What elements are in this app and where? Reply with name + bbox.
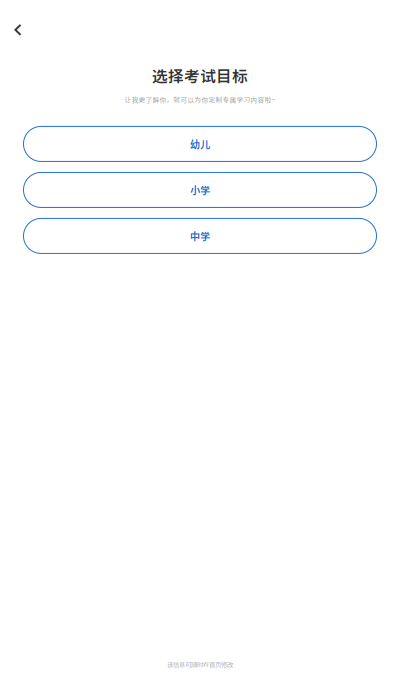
button[interactable]: Back: [1, 13, 35, 47]
staticText: 中学: [190, 229, 210, 243]
staticText: 幼儿: [190, 137, 210, 151]
staticText: 小学: [190, 183, 210, 197]
staticText: 选择考试目标: [152, 64, 248, 87]
staticText: 让我更了解你，就可以为你定制专属学习内容啦~: [124, 95, 275, 104]
button[interactable]: 幼儿: [23, 126, 376, 161]
button[interactable]: 小学: [23, 172, 376, 207]
button[interactable]: 中学: [23, 218, 376, 253]
staticText: 该信息可随时在首页修改: [167, 660, 233, 669]
